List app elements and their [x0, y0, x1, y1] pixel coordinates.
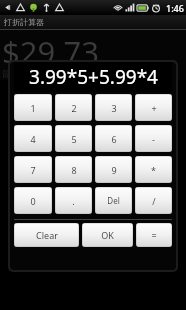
staticText: Clear [36, 229, 58, 241]
button[interactable]: 8 [55, 156, 92, 183]
button[interactable]: 5 [55, 125, 92, 152]
button[interactable]: + [135, 94, 172, 121]
button[interactable]: 3 [95, 94, 132, 121]
staticText: 5 [71, 133, 77, 145]
staticText: 9 [111, 164, 117, 176]
button[interactable]: 1 [14, 94, 52, 121]
staticText: 8 [71, 164, 77, 176]
staticText: 0 [30, 195, 36, 207]
button[interactable]: 4 [14, 125, 52, 152]
staticText: 3.99*5+5.99*4 [29, 64, 158, 90]
button[interactable]: 3.99*5+5.99*4 [14, 62, 172, 92]
staticText: 2 [71, 102, 77, 114]
staticText: 打折計算器 [4, 17, 44, 27]
button[interactable]: = [136, 223, 172, 247]
staticText: 4 [30, 133, 36, 145]
staticText: 7 [30, 164, 36, 176]
staticText: / [152, 195, 156, 207]
button[interactable]: 9 [95, 156, 132, 183]
staticText: + [151, 102, 157, 114]
staticText: 6 [111, 133, 117, 145]
button[interactable]: . [55, 187, 92, 214]
staticText: 節省: $24.33 [2, 67, 53, 79]
staticText: - [152, 133, 155, 145]
button[interactable]: Clear [14, 223, 79, 247]
button[interactable]: Del [95, 187, 132, 214]
staticText: . [72, 195, 75, 207]
button[interactable]: 7 [14, 156, 52, 183]
button[interactable]: * [135, 156, 172, 183]
button[interactable]: - [135, 125, 172, 152]
button[interactable]: 0 [14, 187, 52, 214]
staticText: = [151, 229, 157, 241]
staticText: * [151, 164, 156, 176]
button[interactable]: / [135, 187, 172, 214]
staticText: 3 [111, 102, 117, 114]
button[interactable]: 2 [55, 94, 92, 121]
staticText: OK [101, 229, 114, 241]
staticText: $29.73 [2, 31, 99, 73]
staticText: Del [107, 195, 120, 206]
staticText: 1 [30, 102, 36, 114]
staticText: 1:46 [166, 2, 184, 14]
button[interactable]: 6 [95, 125, 132, 152]
button[interactable]: OK [82, 223, 133, 247]
